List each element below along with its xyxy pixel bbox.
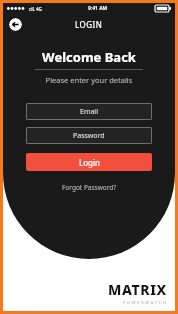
button[interactable]: Back	[9, 18, 22, 31]
staticText: Login	[79, 157, 100, 168]
staticText: Email	[80, 107, 98, 117]
button[interactable]: Email	[26, 103, 152, 120]
staticText: Please enter your details	[3, 75, 175, 85]
staticText: Password	[73, 131, 105, 141]
staticText: ciL 4G	[29, 6, 42, 12]
staticText: LOGIN	[75, 19, 103, 30]
button[interactable]: Login	[26, 153, 152, 171]
staticText: 9:41 AM	[88, 5, 108, 12]
staticText: MATRIX	[108, 280, 167, 299]
staticText: Forgot Password?	[62, 183, 117, 192]
button[interactable]: Password	[26, 127, 152, 144]
staticText: Welcome Back	[3, 48, 175, 66]
button[interactable]: Forgot Password?	[58, 182, 121, 193]
staticText: P O W E R W A T C H	[123, 300, 167, 305]
